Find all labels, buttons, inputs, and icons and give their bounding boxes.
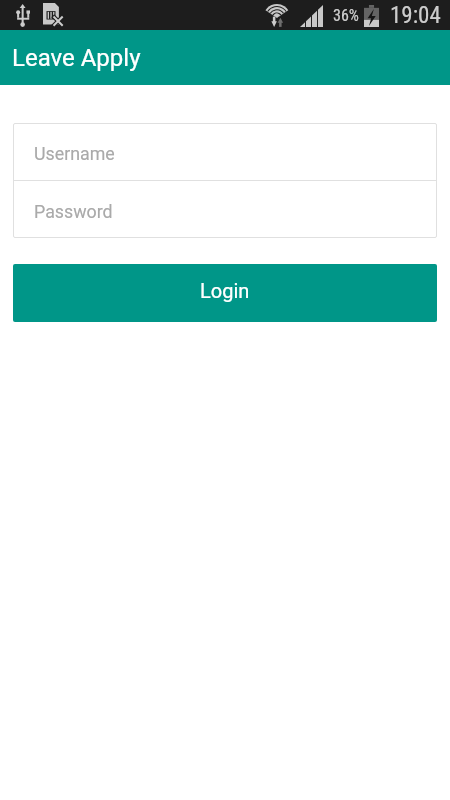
button[interactable]: Password	[13, 181, 437, 238]
staticText: 19:04	[390, 2, 441, 29]
staticText: 36%	[333, 6, 359, 25]
button[interactable]: Login	[13, 264, 437, 322]
staticText: Password	[34, 201, 113, 222]
staticText: Leave Apply	[12, 44, 141, 72]
button[interactable]: Username	[13, 123, 437, 180]
staticText: Username	[34, 143, 115, 164]
staticText: Login	[200, 279, 250, 302]
